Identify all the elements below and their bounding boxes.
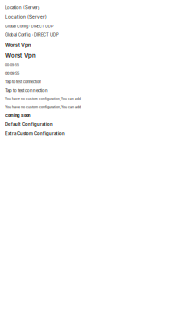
staticText: Extra Custom Configuration — [5, 131, 65, 136]
staticText: You have no custom configuration,You can… — [5, 97, 81, 101]
staticText: Tap to test connection — [5, 80, 41, 84]
staticText: Tap to test connection — [5, 88, 48, 93]
staticText: Location (Server) — [5, 14, 47, 20]
staticText: You have no custom configuration,You can… — [5, 105, 81, 109]
staticText: Worst Vpn — [5, 52, 36, 59]
staticText: 00:09:55 — [5, 71, 19, 76]
staticText: Default Configuration — [5, 122, 53, 127]
staticText: Location (Server) — [5, 5, 40, 10]
staticText: Worst Vpn — [5, 41, 31, 48]
staticText: Coming Soon — [5, 113, 30, 118]
staticText: 00:09:55 — [5, 63, 19, 67]
staticText: Global Config : DIRECT UDP — [5, 32, 59, 37]
staticText: Global Config : DIRECT UDP — [5, 24, 53, 28]
